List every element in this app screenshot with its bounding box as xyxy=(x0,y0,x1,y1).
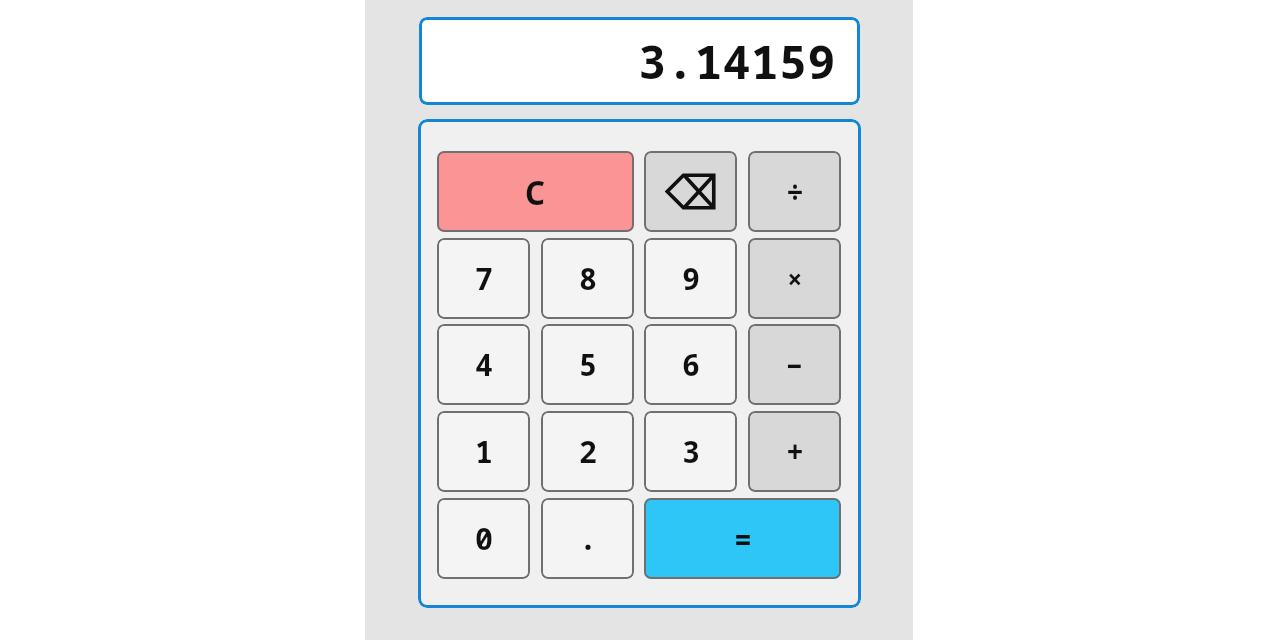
button[interactable]: 1 xyxy=(437,411,530,492)
button[interactable]: 6 xyxy=(644,324,737,405)
button[interactable]: C xyxy=(437,151,634,232)
button[interactable]: Backspace xyxy=(644,151,737,232)
button[interactable]: ÷ xyxy=(748,151,841,232)
staticText: 5 xyxy=(579,344,597,385)
button[interactable]: = xyxy=(644,498,841,579)
button[interactable]: 7 xyxy=(437,238,530,319)
staticText: . xyxy=(579,518,597,559)
staticText: + xyxy=(786,431,804,472)
staticText: 7 xyxy=(475,258,493,299)
staticText: = xyxy=(734,518,752,559)
staticText: 6 xyxy=(682,344,700,385)
button[interactable]: . xyxy=(541,498,634,579)
staticText: 3.14159 xyxy=(638,29,836,93)
staticText: 3 xyxy=(682,431,700,472)
staticText: × xyxy=(787,261,803,296)
button[interactable]: + xyxy=(748,411,841,492)
staticText: C xyxy=(525,169,546,215)
button[interactable]: 9 xyxy=(644,238,737,319)
staticText: ÷ xyxy=(786,171,804,212)
staticText: 9 xyxy=(682,258,700,299)
staticText: 1 xyxy=(475,431,493,472)
button[interactable]: 8 xyxy=(541,238,634,319)
staticText: 4 xyxy=(475,344,493,385)
staticText: 2 xyxy=(579,431,597,472)
button[interactable]: 5 xyxy=(541,324,634,405)
button[interactable]: 3.14159 xyxy=(419,17,860,105)
button[interactable]: − xyxy=(748,324,841,405)
button[interactable]: 4 xyxy=(437,324,530,405)
button[interactable]: 0 xyxy=(437,498,530,579)
staticText: 8 xyxy=(579,258,597,299)
button[interactable]: × xyxy=(748,238,841,319)
staticText: 0 xyxy=(475,518,493,559)
button[interactable]: 2 xyxy=(541,411,634,492)
button[interactable]: 3 xyxy=(644,411,737,492)
staticText: − xyxy=(786,346,803,384)
